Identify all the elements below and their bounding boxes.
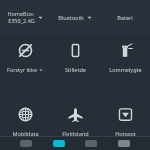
button[interactable]: Item 4 [118, 140, 130, 147]
staticText: Mobildata [12, 130, 39, 136]
button[interactable]: Airplane mode [50, 104, 100, 136]
button[interactable]: Mobile data [0, 104, 50, 136]
staticText: Bateri [117, 14, 133, 21]
button[interactable]: Do not disturb [0, 40, 50, 88]
staticText: Stilletde [65, 66, 86, 73]
button[interactable]: HomeBox- [0, 0, 50, 34]
button[interactable]: Item 3 [85, 140, 97, 147]
button[interactable]: Item 1 [20, 140, 32, 147]
staticText: Flytilstand [62, 130, 89, 136]
button[interactable]: Bluetooth [50, 0, 100, 34]
staticText: Hotspot [115, 130, 136, 136]
staticText: Forstyr ikke [7, 66, 37, 73]
button[interactable]: Flashlight [100, 40, 150, 88]
button[interactable]: Bateri [100, 0, 150, 34]
button[interactable]: Hotspot [100, 104, 150, 136]
button[interactable]: Silent [50, 40, 100, 88]
staticText: Lommelygte [109, 66, 142, 73]
staticText: HomeBox- [7, 10, 35, 17]
staticText: Bluetooth [58, 14, 84, 21]
staticText: E350_2.4G [8, 17, 35, 24]
button[interactable]: Active [53, 140, 65, 147]
